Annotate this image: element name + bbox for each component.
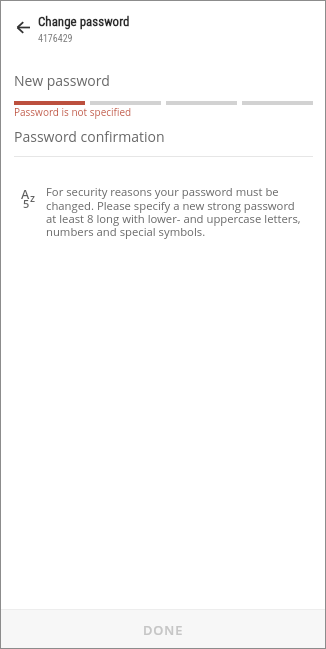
staticText: For security reasons your password must … [46, 184, 302, 239]
staticText: DONE [143, 621, 184, 638]
staticText: New password [14, 71, 110, 90]
staticText: Change password [38, 14, 130, 29]
button[interactable]: Back [10, 15, 37, 40]
staticText: A [21, 186, 30, 203]
staticText: 4176429 [38, 33, 73, 45]
staticText: z [30, 191, 36, 205]
staticText: Password is not specified [14, 105, 132, 119]
staticText: Password confirmation [14, 127, 165, 146]
staticText: 5 [23, 196, 30, 211]
button[interactable]: DONE [0, 609, 326, 649]
